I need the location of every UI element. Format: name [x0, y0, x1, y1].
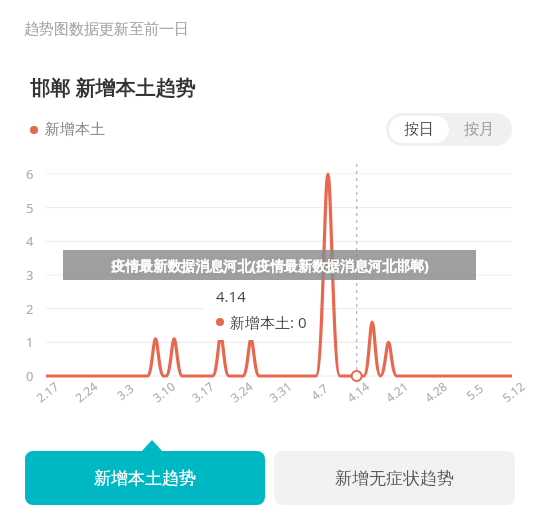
staticText: 按日: [404, 120, 434, 139]
staticText: 4.14: [216, 286, 246, 306]
staticText: 新增无症状趋势: [335, 468, 454, 489]
staticText: 按月: [464, 120, 494, 139]
staticText: 疫情最新数据消息河北(疫情最新数据消息河北邯郸): [111, 256, 429, 275]
staticText: 趋势图数据更新至前一日: [24, 20, 189, 39]
staticText: 新增本土: 0: [230, 312, 307, 332]
staticText: 新增本土趋势: [94, 468, 196, 489]
button[interactable]: 按月: [449, 116, 509, 143]
staticText: 邯郸 新增本土趋势: [30, 74, 196, 101]
button[interactable]: 新增本土趋势: [25, 451, 265, 505]
button[interactable]: 按日: [389, 116, 449, 143]
staticText: 新增本土: [45, 120, 105, 139]
button[interactable]: 新增无症状趋势: [274, 451, 515, 505]
